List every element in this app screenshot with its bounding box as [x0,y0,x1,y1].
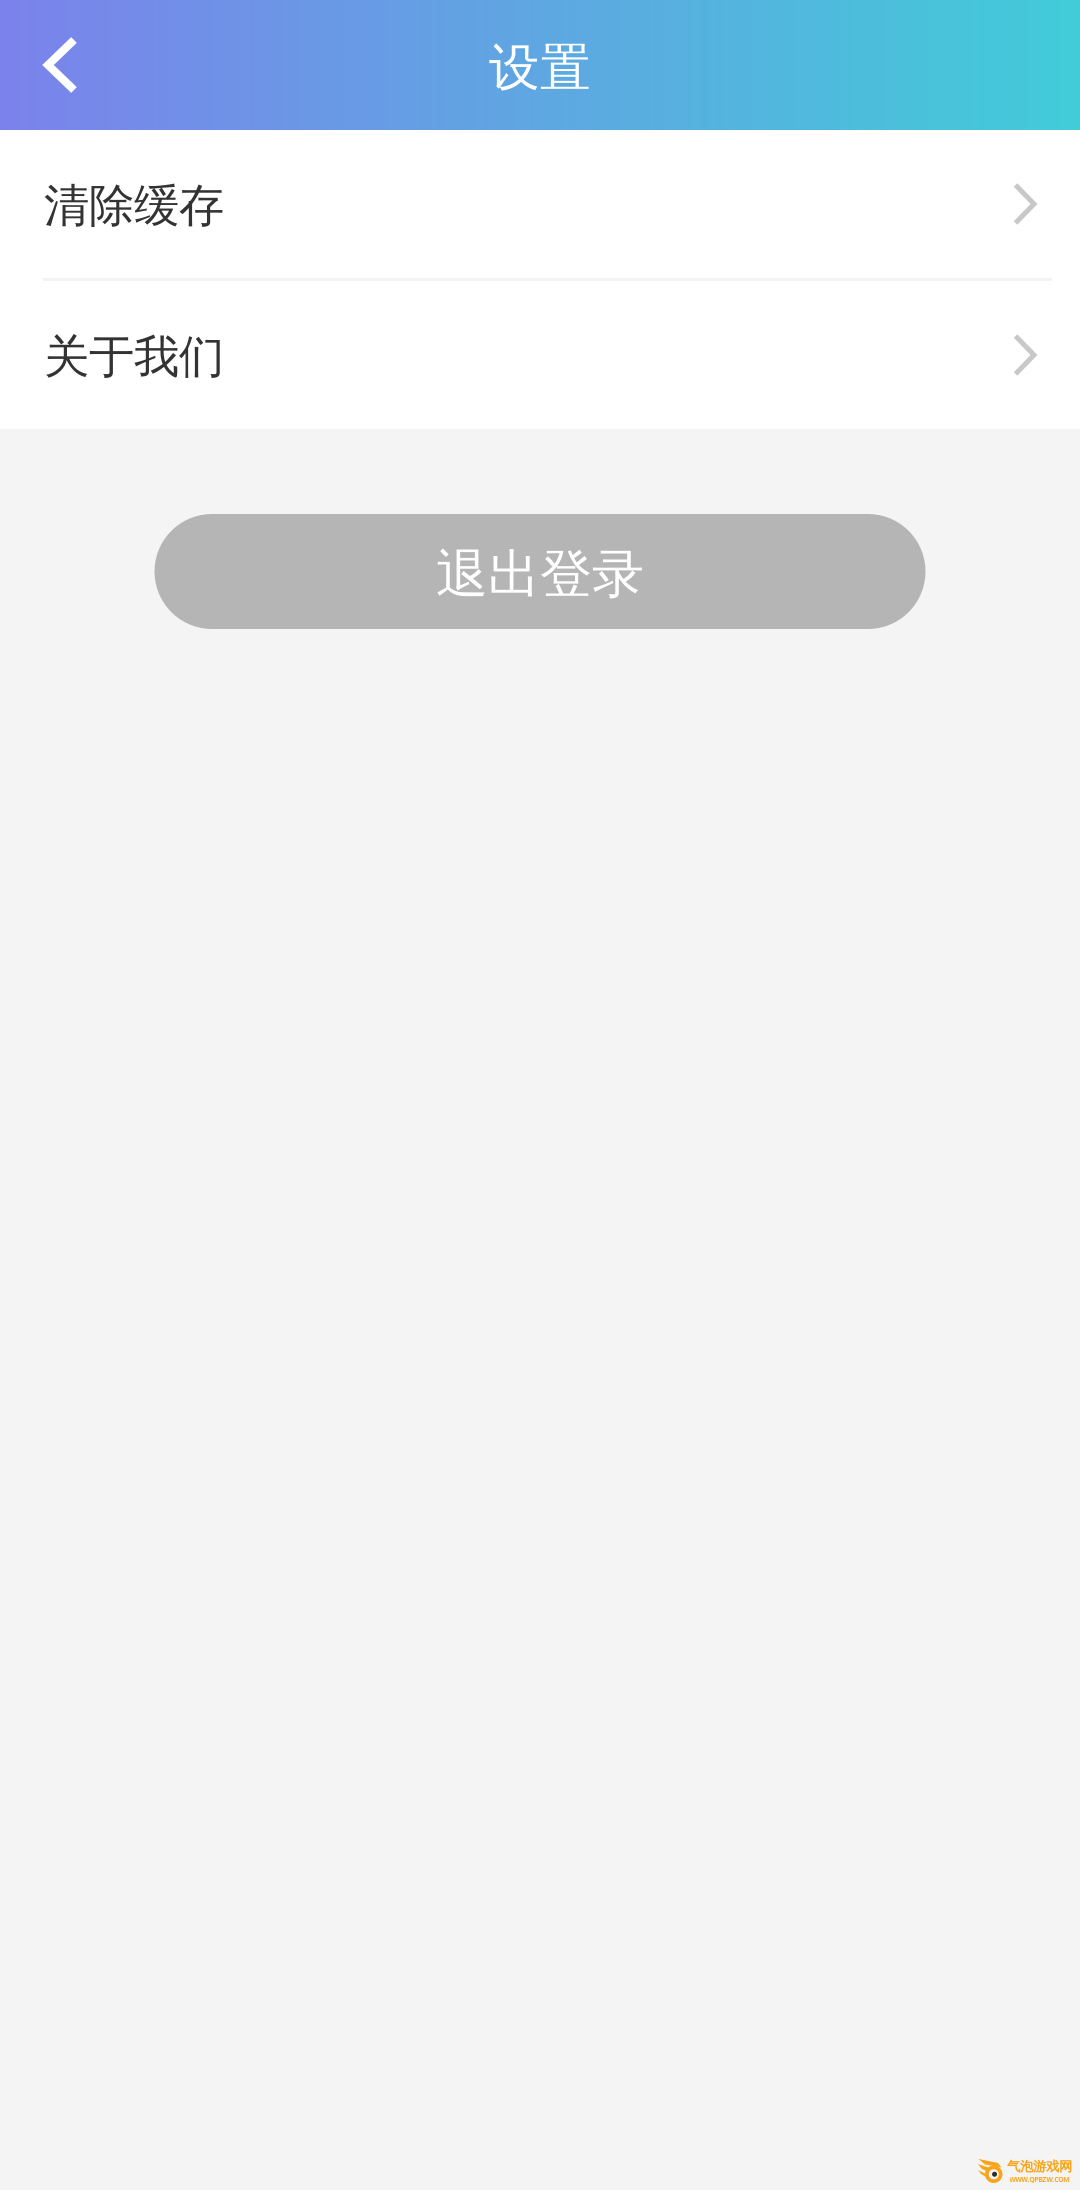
button[interactable]: 清除缓存 [0,130,1080,278]
staticText: 关于我们 [44,328,224,385]
button[interactable]: Back [0,0,122,130]
staticText: 退出登录 [436,542,644,607]
staticText: WWW.QPBZW.COM [1009,2175,1069,2184]
staticText: 清除缓存 [44,177,224,234]
staticText: 气泡游戏网 [1007,2158,1072,2175]
button[interactable]: 退出登录 [154,514,925,629]
staticText: 设置 [489,36,591,100]
button[interactable]: 关于我们 [0,281,1080,429]
